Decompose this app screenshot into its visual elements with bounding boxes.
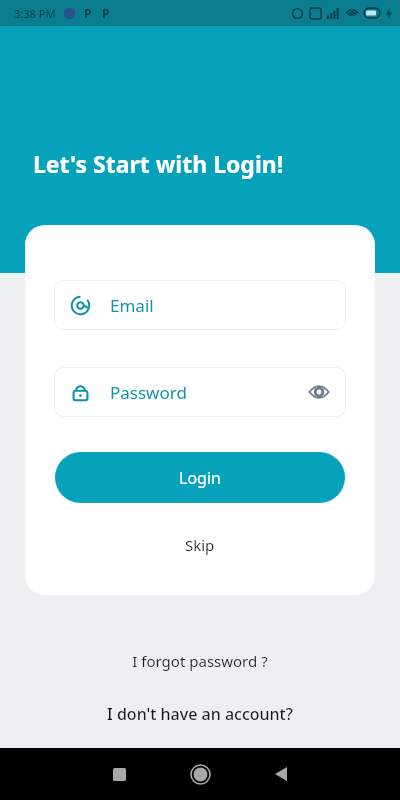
staticText: Skip	[185, 535, 215, 555]
button[interactable]: Recents	[104, 759, 134, 789]
other: Email	[70, 295, 91, 316]
staticText: 3:38 PM	[14, 6, 56, 21]
button[interactable]: Email	[54, 280, 346, 330]
staticText: I forgot password ?	[132, 651, 268, 671]
button[interactable]: Password	[54, 367, 346, 417]
button[interactable]: Back	[266, 759, 296, 789]
button[interactable]: Skip	[25, 527, 375, 563]
button[interactable]: Login	[55, 452, 345, 503]
staticText: P	[84, 5, 92, 21]
staticText: Email	[110, 294, 154, 317]
button[interactable]: I forgot password ?	[0, 645, 400, 677]
other: Password	[70, 382, 91, 403]
staticText: I don't have an account?	[107, 703, 293, 725]
button[interactable]: I don't have an account?	[0, 697, 400, 731]
staticText: Let's Start with Login!	[33, 148, 284, 179]
staticText: Login	[179, 467, 221, 489]
button[interactable]: Show password	[307, 380, 331, 404]
staticText: Password	[110, 381, 187, 404]
staticText: P	[102, 5, 110, 21]
button[interactable]: Home	[183, 757, 217, 791]
